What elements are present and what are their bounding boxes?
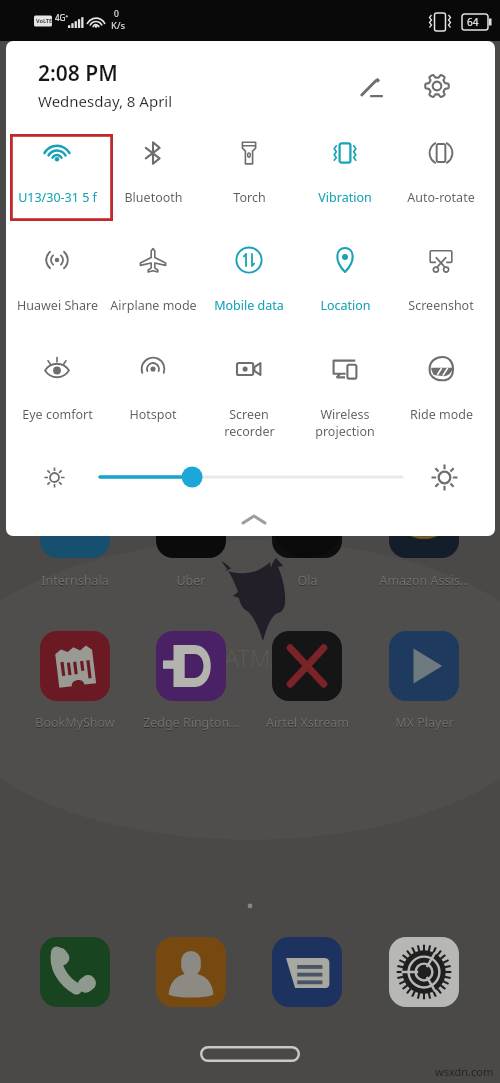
staticText: Internshala: [41, 573, 109, 590]
button[interactable]: Mobile data: [201, 234, 297, 331]
staticText: Airplane mode: [110, 297, 197, 314]
button[interactable]: Collapse: [224, 505, 284, 533]
staticText: Ride mode: [410, 406, 473, 423]
staticText: Wednesday, 8 April: [38, 91, 173, 111]
button[interactable]: Settings: [414, 63, 460, 109]
staticText: Mobile data: [214, 297, 284, 314]
button[interactable]: [156, 631, 226, 701]
button[interactable]: Screen: [201, 343, 297, 440]
button[interactable]: Ride mode: [393, 343, 489, 440]
staticText: Location: [320, 297, 371, 314]
staticText: Wireless: [320, 406, 370, 423]
button[interactable]: [389, 937, 459, 1007]
button[interactable]: [156, 488, 226, 558]
staticText: Screen: [229, 406, 269, 423]
button[interactable]: Location: [297, 234, 393, 331]
button[interactable]: High brightness: [422, 455, 466, 499]
staticText: VoLTE: [36, 17, 53, 24]
button[interactable]: [156, 937, 226, 1007]
button[interactable]: Auto-rotate: [393, 127, 489, 223]
staticText: 64: [467, 15, 479, 29]
staticText: projection: [315, 423, 375, 440]
staticText: BATMAN: [209, 641, 303, 674]
button[interactable]: U13/30-31 5 f: [9, 127, 105, 223]
button[interactable]: Low brightness: [34, 457, 74, 497]
staticText: BookMyShow: [35, 715, 115, 732]
button[interactable]: [272, 488, 342, 558]
staticText: Amazon Assis…: [379, 572, 470, 589]
staticText: Auto-rotate: [407, 189, 475, 206]
staticText: Amazon Assis…: [379, 573, 470, 590]
staticText: Screenshot: [408, 297, 474, 314]
staticText: Uber: [176, 572, 206, 589]
button[interactable]: [272, 631, 342, 701]
staticText: Ola: [297, 573, 318, 590]
staticText: Airtel Xstream: [266, 715, 349, 732]
button[interactable]: Screenshot: [393, 234, 489, 331]
staticText: wsxdn.com: [435, 1064, 494, 1079]
button[interactable]: [272, 937, 342, 1007]
staticText: Zedge Rington…: [143, 714, 239, 731]
staticText: BookMyShow: [35, 714, 115, 731]
button[interactable]: [88, 460, 414, 494]
staticText: 0: [114, 8, 119, 20]
staticText: Ola: [297, 572, 318, 589]
button[interactable]: Home: [200, 1046, 300, 1062]
staticText: Hotspot: [129, 406, 177, 423]
button[interactable]: Bluetooth: [105, 127, 201, 223]
button[interactable]: [389, 488, 459, 558]
button[interactable]: Vibration: [297, 127, 393, 223]
button[interactable]: Edit: [348, 64, 394, 110]
button[interactable]: [40, 488, 110, 558]
button[interactable]: Torch: [201, 127, 297, 223]
staticText: Huawei Share: [17, 297, 98, 314]
staticText: 2:08 PM: [38, 59, 118, 88]
button[interactable]: [389, 631, 459, 701]
button[interactable]: Wireless: [297, 343, 393, 440]
staticText: Zedge Rington…: [143, 715, 239, 732]
staticText: recorder: [224, 423, 275, 440]
button[interactable]: Airplane mode: [105, 234, 201, 331]
staticText: 4G⁺: [55, 12, 69, 23]
staticText: Airtel Xstream: [266, 714, 349, 731]
staticText: Vibration: [318, 189, 372, 206]
staticText: Eye comfort: [22, 406, 93, 423]
staticText: K/s: [111, 19, 125, 32]
staticText: Uber: [176, 573, 206, 590]
staticText: Internshala: [41, 572, 109, 589]
button[interactable]: Eye comfort: [9, 343, 105, 440]
staticText: Bluetooth: [124, 189, 183, 206]
staticText: MX Player: [395, 715, 454, 732]
staticText: U13/30-31 5 f: [18, 189, 97, 206]
button[interactable]: [40, 937, 110, 1007]
button[interactable]: [40, 631, 110, 701]
button[interactable]: Huawei Share: [9, 234, 105, 331]
staticText: MX Player: [395, 714, 454, 731]
button[interactable]: Hotspot: [105, 343, 201, 440]
staticText: Torch: [233, 189, 266, 206]
